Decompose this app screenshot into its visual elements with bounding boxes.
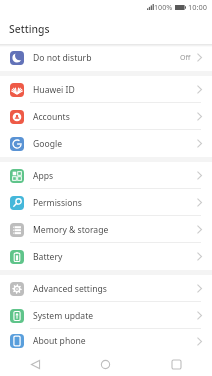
button[interactable]: Permissions <box>0 189 212 216</box>
button[interactable]: Back <box>0 353 70 376</box>
button[interactable]: Home <box>70 353 141 376</box>
staticText: Memory & storage <box>33 224 109 236</box>
button[interactable]: Do not disturb <box>0 44 212 71</box>
button[interactable]: Recents <box>141 353 212 376</box>
button[interactable]: Apps <box>0 162 212 189</box>
staticText: Huawei ID <box>33 84 75 96</box>
button[interactable]: Accounts <box>0 103 212 130</box>
staticText: Settings <box>9 22 50 36</box>
staticText: Accounts <box>33 111 70 123</box>
staticText: 100% <box>154 2 173 12</box>
button[interactable]: Google <box>0 130 212 157</box>
button[interactable]: System update <box>0 302 212 329</box>
staticText: System update <box>33 310 94 322</box>
button[interactable]: About phone <box>0 329 212 353</box>
staticText: Battery <box>33 251 63 263</box>
staticText: Apps <box>33 170 54 182</box>
staticText: Advanced settings <box>33 283 107 295</box>
staticText: Permissions <box>33 197 82 209</box>
button[interactable]: Advanced settings <box>0 275 212 302</box>
button[interactable]: Memory & storage <box>0 216 212 243</box>
button[interactable]: Battery <box>0 243 212 270</box>
button[interactable]: Huawei ID <box>0 76 212 103</box>
staticText: Google <box>33 138 63 150</box>
staticText: 10:00 <box>188 2 207 12</box>
staticText: About phone <box>33 335 86 347</box>
staticText: Off <box>180 53 191 63</box>
staticText: Do not disturb <box>33 52 92 64</box>
